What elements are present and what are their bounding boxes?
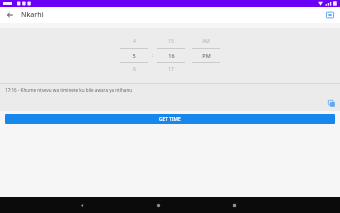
button[interactable]: Back: [75, 198, 89, 212]
staticText: 15: [168, 38, 174, 45]
staticText: AM: [202, 38, 210, 45]
staticText: Nkarhi: [21, 10, 44, 20]
button[interactable]: 4: [120, 38, 148, 73]
button[interactable]: Switch to text input mode: [324, 9, 336, 21]
button[interactable]: GET TIME: [5, 114, 335, 124]
button[interactable]: AM: [192, 38, 220, 73]
staticText: 4: [133, 38, 136, 45]
staticText: 17:16 - Khume ntsevu wa timinete ku bile…: [5, 87, 133, 93]
button[interactable]: Back: [4, 9, 16, 21]
staticText: 17: [168, 66, 174, 73]
button[interactable]: Copy: [325, 97, 337, 109]
button[interactable]: Recent apps: [227, 198, 241, 212]
staticText: PM: [202, 52, 211, 59]
staticText: GET TIME: [159, 116, 181, 123]
staticText: :: [152, 52, 154, 59]
staticText: 5: [132, 52, 136, 59]
staticText: 16: [168, 52, 175, 59]
button[interactable]: 15: [157, 38, 185, 73]
button[interactable]: Home: [151, 198, 165, 212]
staticText: 6: [133, 66, 136, 73]
